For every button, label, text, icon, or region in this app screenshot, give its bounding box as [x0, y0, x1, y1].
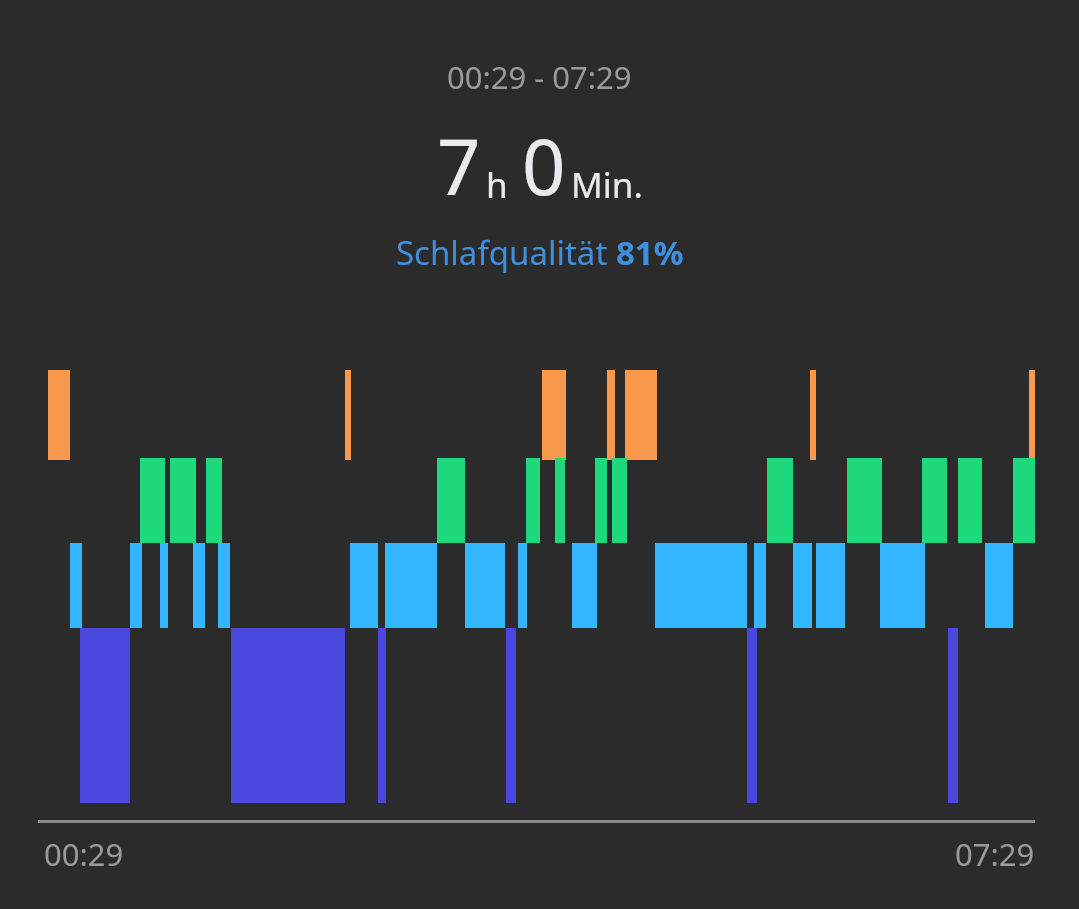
- staticText: 0: [522, 114, 566, 218]
- staticText: 7: [437, 114, 481, 218]
- staticText: h: [486, 161, 508, 209]
- button[interactable]: 07:29: [955, 833, 1035, 875]
- staticText: Min.: [571, 161, 643, 209]
- button[interactable]: 00:29 - 07:29: [447, 56, 632, 98]
- button[interactable]: Sleep stages hypnogram: [0, 0, 1079, 909]
- button[interactable]: 00:29: [44, 833, 124, 875]
- button[interactable]: Schlafqualität 81%: [396, 230, 684, 275]
- button[interactable]: 7: [437, 114, 643, 218]
